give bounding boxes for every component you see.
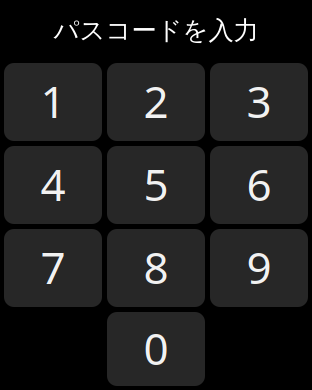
button[interactable]: 4 [4,146,102,224]
button[interactable]: 2 [107,63,205,141]
staticText: 1 [40,72,65,130]
staticText: 0 [143,319,168,377]
staticText: 4 [40,155,65,213]
staticText: 9 [246,238,271,296]
staticText: 5 [143,155,168,213]
button[interactable]: 3 [210,63,308,141]
button[interactable]: 1 [4,63,102,141]
button[interactable]: 5 [107,146,205,224]
button[interactable]: 9 [210,229,308,307]
staticText: パスコードを入力 [53,15,258,46]
staticText: 6 [246,155,271,213]
button[interactable]: 8 [107,229,205,307]
button[interactable]: 7 [4,229,102,307]
staticText: 3 [246,72,271,130]
staticText: 8 [143,238,168,296]
staticText: 2 [143,72,168,130]
staticText: 7 [40,238,65,296]
button[interactable]: 0 [107,312,205,386]
button[interactable]: 6 [210,146,308,224]
